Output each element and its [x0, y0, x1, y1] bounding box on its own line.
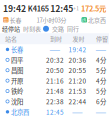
staticText: 4分	[96, 76, 106, 85]
staticText: 四平	[11, 55, 23, 64]
button[interactable]: 昌图	[0, 65, 109, 75]
button[interactable]: 时刻表	[23, 24, 41, 33]
staticText: 20:55	[68, 66, 86, 75]
staticText: 21:16	[46, 76, 64, 85]
staticText: 172.5元	[81, 3, 106, 14]
button[interactable]: 交路	[52, 24, 64, 33]
staticText: 长春	[11, 45, 23, 54]
staticText: 21:48	[46, 86, 64, 96]
button[interactable]: 北京西	[0, 107, 109, 117]
staticText: 20:50	[46, 66, 64, 75]
staticText: ——	[49, 45, 60, 54]
staticText: 22:44	[68, 97, 86, 106]
staticText: 沈阳	[11, 97, 23, 106]
staticText: 20:36	[68, 55, 86, 64]
button[interactable]: 沈阳	[0, 96, 109, 107]
staticText: 17小时03分	[36, 15, 66, 24]
button[interactable]: 铁岭	[0, 86, 109, 96]
staticText: 21:53	[68, 86, 86, 96]
button[interactable]: 长春	[0, 44, 109, 55]
staticText: 4分	[96, 55, 106, 64]
staticText: 北京西	[11, 107, 29, 116]
staticText: 开原	[11, 76, 23, 85]
staticText: 停留	[96, 34, 108, 43]
staticText: 终	[82, 16, 87, 23]
staticText: ——	[72, 107, 83, 116]
staticText: ——	[95, 107, 106, 116]
staticText: 长春	[8, 15, 21, 24]
staticText: 12:45	[50, 2, 73, 14]
staticText: 时刻表	[23, 24, 41, 33]
staticText: 发时	[72, 34, 84, 43]
staticText: 21:20	[68, 76, 86, 85]
staticText: 22:38	[46, 97, 64, 106]
staticText: ——	[95, 45, 106, 54]
staticText: 交路	[52, 24, 64, 33]
staticText: 同行	[67, 24, 79, 33]
staticText: 站名	[5, 34, 17, 43]
staticText: 19:42	[68, 45, 86, 54]
button[interactable]: 开原	[0, 75, 109, 86]
button[interactable]: 四平	[0, 55, 109, 65]
staticText: 20:32	[46, 55, 64, 64]
staticText: 经停站	[2, 24, 20, 33]
staticText: 北京西	[87, 15, 106, 24]
staticText: 19:42	[3, 2, 26, 14]
staticText: 铁岭	[11, 86, 23, 96]
staticText: 5分	[96, 66, 106, 75]
staticText: 到时	[50, 34, 62, 43]
staticText: 12:45	[46, 107, 64, 116]
staticText: K4165	[28, 3, 49, 14]
staticText: 5分	[96, 86, 106, 96]
staticText: 6分	[96, 97, 106, 106]
button[interactable]: 同行	[67, 24, 79, 33]
button[interactable]: 更多	[43, 26, 49, 32]
staticText: 始	[3, 16, 8, 23]
staticText: +1	[73, 5, 79, 12]
staticText: 昌图	[11, 66, 23, 75]
button[interactable]: 经停站	[2, 24, 20, 33]
